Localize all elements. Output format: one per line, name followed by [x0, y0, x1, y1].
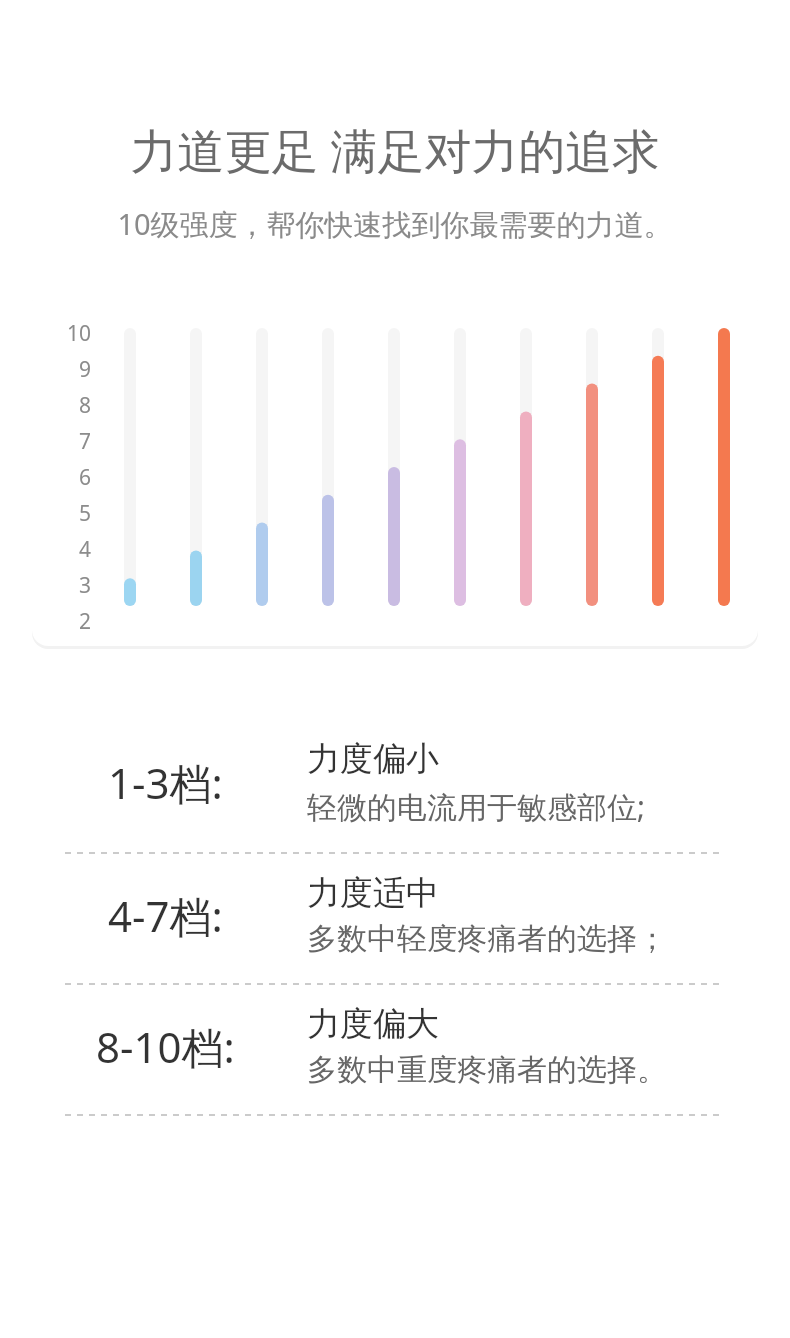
button[interactable]: 强度等级图表: [32, 286, 758, 646]
staticText: 力度偏小: [307, 738, 439, 780]
staticText: 力道更足 满足对力的追求: [0, 118, 790, 182]
button[interactable]: 8-10档:: [0, 985, 790, 1115]
staticText: 2: [79, 607, 92, 636]
staticText: 力度偏大: [307, 1003, 439, 1045]
staticText: 多数中轻度疼痛者的选择；: [307, 920, 667, 958]
button[interactable]: 1-3档:: [0, 720, 790, 853]
staticText: 5: [79, 499, 92, 528]
staticText: 7: [79, 427, 92, 456]
staticText: 8: [79, 391, 92, 420]
staticText: 轻微的电流用于敏感部位;: [307, 786, 646, 827]
staticText: 4-7档:: [108, 887, 223, 944]
staticText: 多数中重度疼痛者的选择。: [307, 1051, 667, 1089]
button[interactable]: 4-7档:: [0, 854, 790, 984]
staticText: 9: [79, 355, 92, 384]
staticText: 8-10档:: [96, 1018, 235, 1075]
staticText: 1-3档:: [108, 754, 223, 811]
staticText: 3: [79, 571, 92, 600]
staticText: 力度适中: [307, 872, 439, 914]
staticText: 4: [79, 535, 92, 564]
staticText: 6: [79, 463, 92, 492]
staticText: 10: [67, 319, 92, 348]
staticText: 10级强度，帮你快速找到你最需要的力道。: [0, 204, 790, 244]
